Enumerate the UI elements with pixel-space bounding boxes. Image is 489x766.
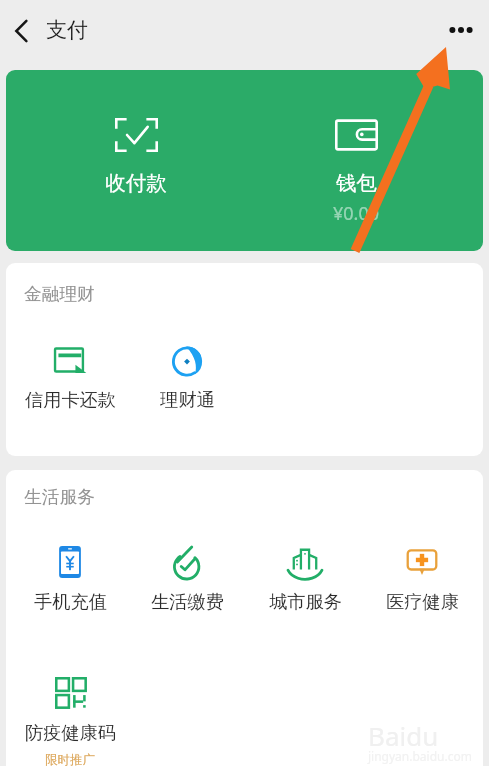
button[interactable]: 收付款 — [76, 88, 196, 233]
staticText: 理财通 — [160, 388, 215, 411]
button[interactable]: More options — [439, 8, 483, 52]
button[interactable]: 医疗健康 — [364, 545, 480, 613]
staticText: Baidu — [368, 718, 439, 753]
staticText: 收付款 — [105, 170, 167, 196]
button[interactable]: 生活缴费 — [129, 545, 245, 613]
staticText: 金融理财 — [24, 283, 95, 305]
staticText: 信用卡还款 — [25, 388, 116, 411]
staticText: 生活缴费 — [151, 590, 224, 613]
button[interactable]: 信用卡还款 — [12, 343, 128, 411]
button[interactable]: 手机充值 — [12, 545, 128, 613]
button[interactable]: 钱包 — [296, 88, 416, 233]
staticText: 支付 — [46, 17, 88, 43]
staticText: 生活服务 — [24, 486, 95, 508]
button[interactable]: 理财通 — [129, 343, 245, 411]
staticText: 钱包 — [336, 170, 377, 196]
staticText: 城市服务 — [269, 590, 342, 613]
button[interactable]: 防疫健康码 — [12, 677, 128, 766]
button[interactable]: Back — [1, 10, 43, 52]
staticText: jingyan.baidu.com — [368, 748, 472, 764]
staticText: 防疫健康码 — [25, 721, 116, 744]
staticText: 限时推广 — [45, 752, 95, 766]
staticText: ¥0.00 — [333, 201, 380, 226]
staticText: 医疗健康 — [386, 590, 459, 613]
button[interactable]: 城市服务 — [247, 545, 363, 613]
staticText: 手机充值 — [34, 590, 107, 613]
